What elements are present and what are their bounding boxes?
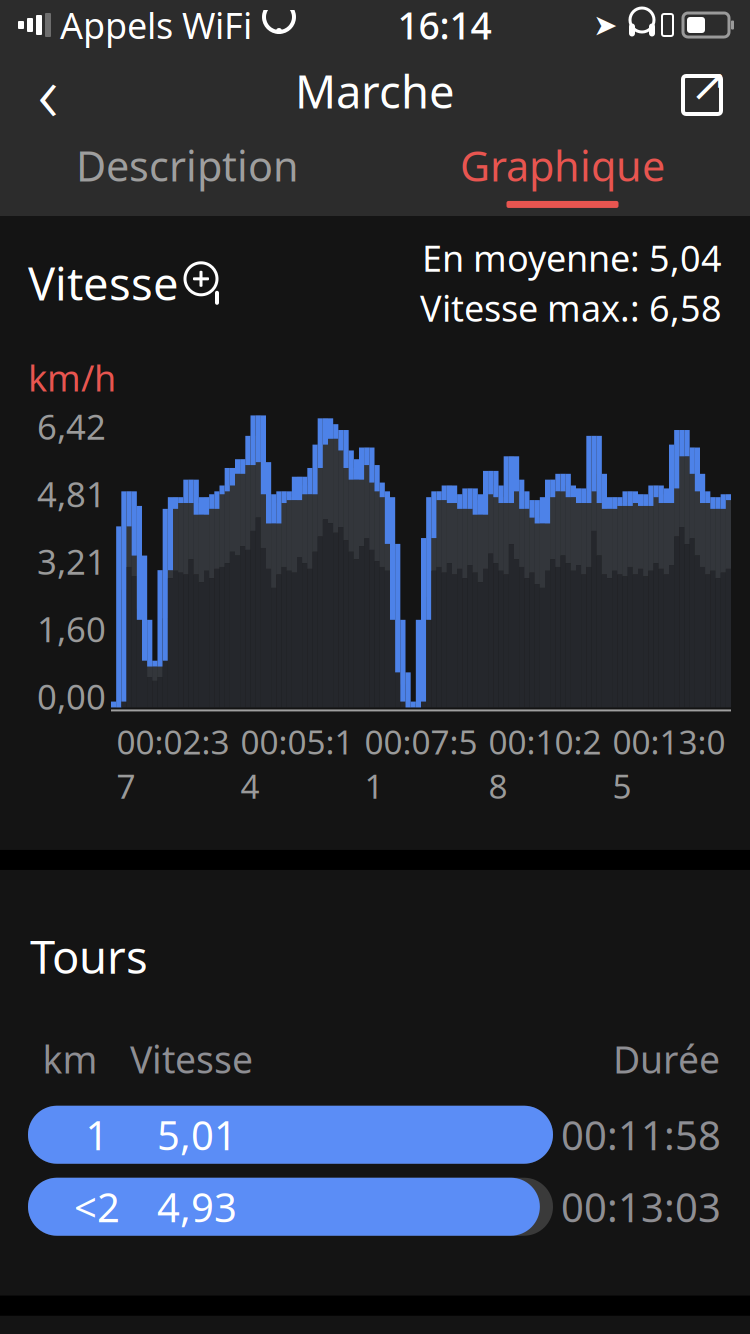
staticText: ↗ bbox=[690, 59, 728, 111]
staticText: km/h bbox=[28, 354, 116, 401]
staticText: En moyenne: 5,04 bbox=[422, 234, 722, 282]
staticText: 6,42 bbox=[37, 403, 106, 449]
staticText: 00:05:14 bbox=[240, 719, 353, 808]
staticText: 16:14 bbox=[397, 0, 491, 50]
button[interactable]: Graphique bbox=[375, 132, 750, 216]
staticText: Graphique bbox=[460, 138, 665, 193]
staticText: ‹ bbox=[37, 38, 58, 144]
staticText: 4,93 bbox=[157, 1180, 237, 1233]
staticText: Description bbox=[76, 138, 299, 193]
staticText: 00:13:03 bbox=[561, 1180, 721, 1233]
staticText: Marche bbox=[295, 61, 455, 121]
staticText: 4,81 bbox=[37, 471, 106, 517]
staticText: Appels WiFi bbox=[60, 1, 252, 49]
staticText: 1,60 bbox=[37, 606, 106, 652]
staticText: 00:11:58 bbox=[561, 1108, 721, 1161]
staticText: 5,01 bbox=[157, 1108, 237, 1161]
staticText: 00:02:37 bbox=[116, 719, 229, 808]
staticText: 00:13:05 bbox=[612, 719, 725, 808]
staticText: Durée bbox=[613, 1034, 720, 1084]
staticText: 00:10:28 bbox=[488, 719, 601, 808]
staticText: km bbox=[42, 1034, 97, 1084]
staticText: 00:07:51 bbox=[364, 719, 477, 808]
button[interactable]: Back bbox=[8, 51, 88, 131]
staticText: Vitesse max.: 6,58 bbox=[420, 284, 722, 332]
staticText: 3,21 bbox=[37, 538, 106, 584]
button[interactable]: Share bbox=[662, 51, 742, 131]
staticText: Vitesse bbox=[28, 253, 179, 313]
staticText: Tours bbox=[30, 926, 148, 986]
button[interactable]: Description bbox=[0, 132, 375, 216]
staticText: ➤ bbox=[593, 8, 618, 42]
staticText: 0,00 bbox=[37, 673, 106, 719]
staticText: 1 bbox=[85, 1108, 108, 1161]
button[interactable]: 1 bbox=[0, 1106, 750, 1164]
button[interactable]: Zoom speed chart bbox=[179, 257, 231, 309]
staticText: <2 bbox=[74, 1180, 120, 1233]
button[interactable]: <2 bbox=[0, 1178, 750, 1236]
staticText: Vitesse bbox=[130, 1034, 253, 1084]
